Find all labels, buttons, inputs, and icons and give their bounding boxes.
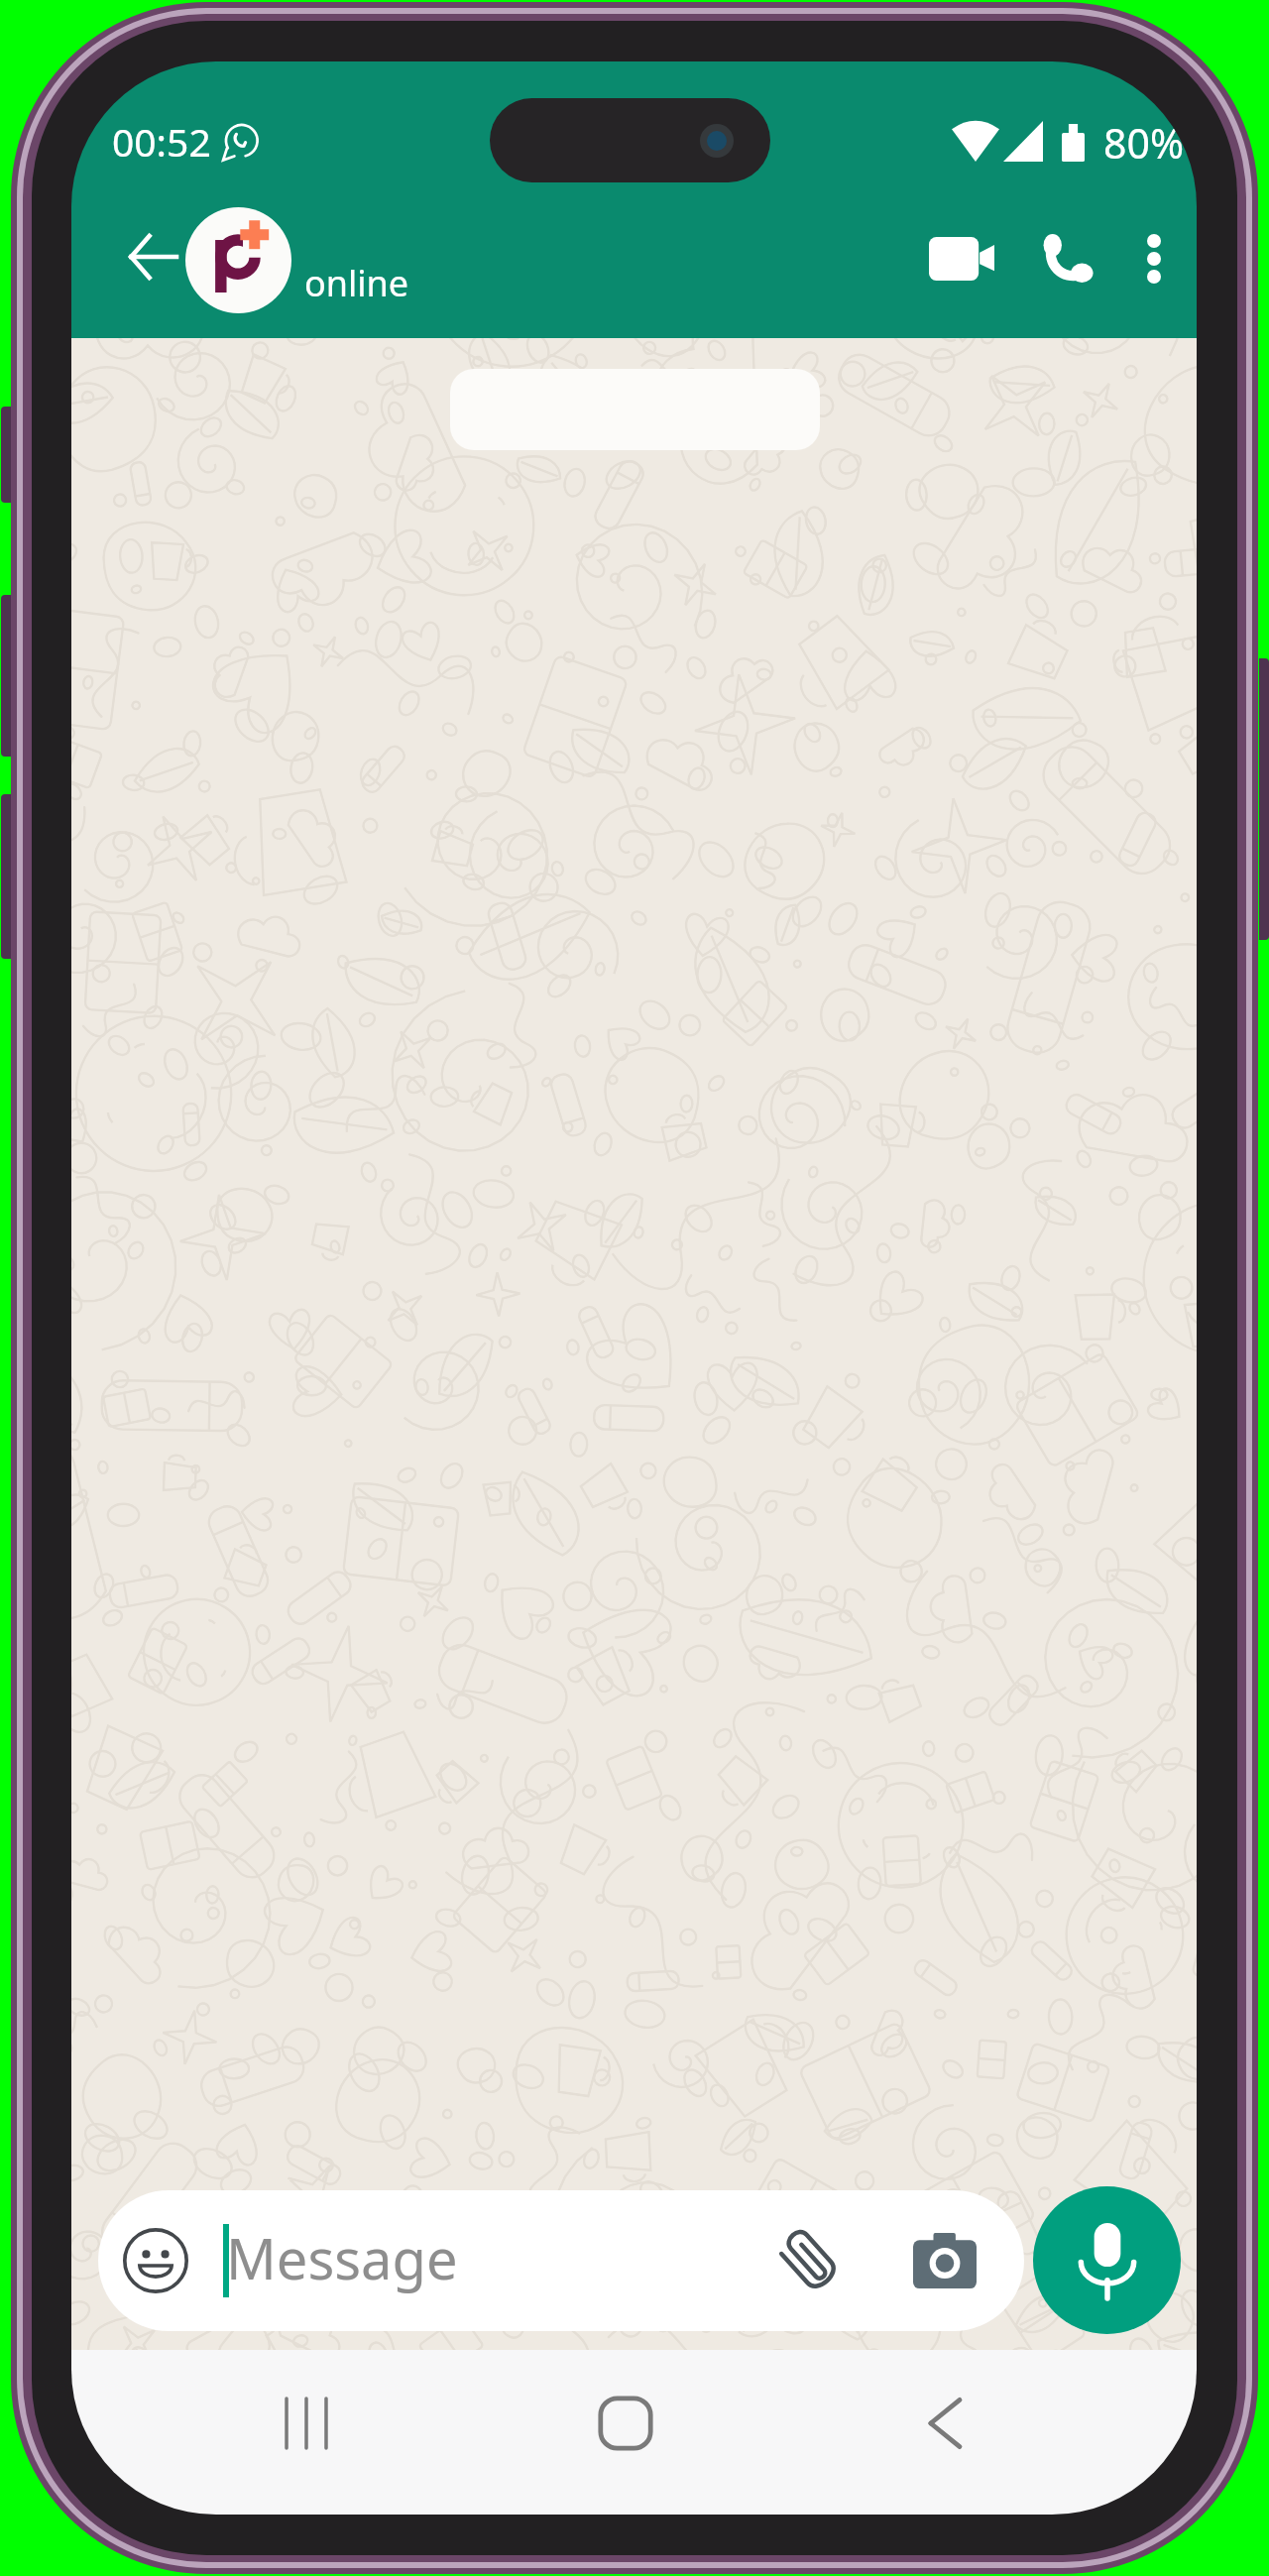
button[interactable]: Record voice message [1033,2186,1181,2334]
staticText: 00:52 [112,115,211,168]
staticText: Message [226,2220,458,2295]
button[interactable]: More options [1106,211,1197,306]
button[interactable]: Recent apps [253,2370,360,2477]
button[interactable]: Back [892,2370,999,2477]
button[interactable]: Video call [914,211,1009,306]
staticText: online [304,259,409,307]
button[interactable] [185,207,291,313]
button[interactable]: Message [98,2190,1024,2331]
button[interactable]: Back [107,224,198,290]
button[interactable]: Home [572,2370,679,2477]
staticText: 80% [1103,115,1184,171]
button[interactable]: Voice call [1018,211,1113,306]
